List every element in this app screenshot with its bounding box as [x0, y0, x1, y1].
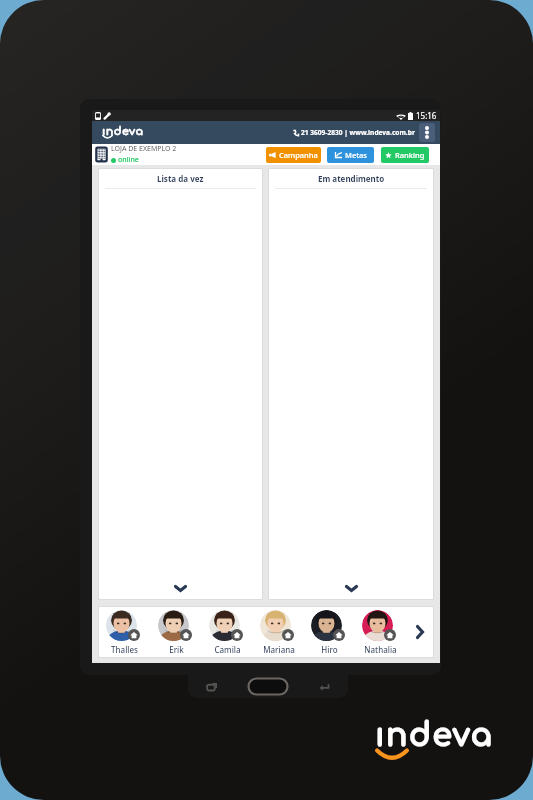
staticText: Erik [169, 644, 184, 655]
button[interactable]: Mariana [253, 610, 304, 655]
staticText: 15:16 [416, 110, 437, 121]
button[interactable]: Ranking [381, 147, 429, 163]
staticText: Metas [345, 150, 367, 160]
staticText: Mariana [263, 644, 295, 655]
button[interactable]: Recent apps [201, 678, 223, 696]
button[interactable]: Erik [150, 610, 202, 655]
button[interactable]: Home [247, 677, 289, 696]
button[interactable]: Expand list [98, 576, 263, 600]
staticText: Lista da vez [157, 173, 204, 184]
button[interactable]: Expand list [268, 576, 434, 600]
button[interactable]: Camila [202, 610, 253, 655]
button[interactable]: Back [313, 678, 335, 696]
staticText: Hiro [321, 644, 338, 655]
staticText: ındeva [375, 718, 494, 754]
button[interactable]: Campanha [266, 147, 321, 163]
button[interactable]: Metas [327, 147, 374, 163]
staticText: LOJA DE EXEMPLO 2 [111, 144, 177, 154]
button[interactable]: Hiro [304, 610, 355, 655]
staticText: Campanha [279, 150, 318, 160]
staticText: Thalles [111, 644, 138, 655]
staticText: Camila [214, 644, 241, 655]
button[interactable]: Thalles [98, 610, 150, 655]
staticText: Em atendimento [318, 173, 385, 184]
staticText: Nathalia [364, 644, 397, 655]
button[interactable]: More options [419, 123, 435, 142]
button[interactable]: Next page [406, 606, 434, 658]
staticText: online [118, 155, 139, 165]
staticText: 21 3609-2830 | www.indeva.com.br [301, 128, 415, 137]
staticText: ındeva [102, 125, 144, 137]
staticText: Ranking [395, 150, 425, 160]
button[interactable]: Nathalia [355, 610, 406, 655]
